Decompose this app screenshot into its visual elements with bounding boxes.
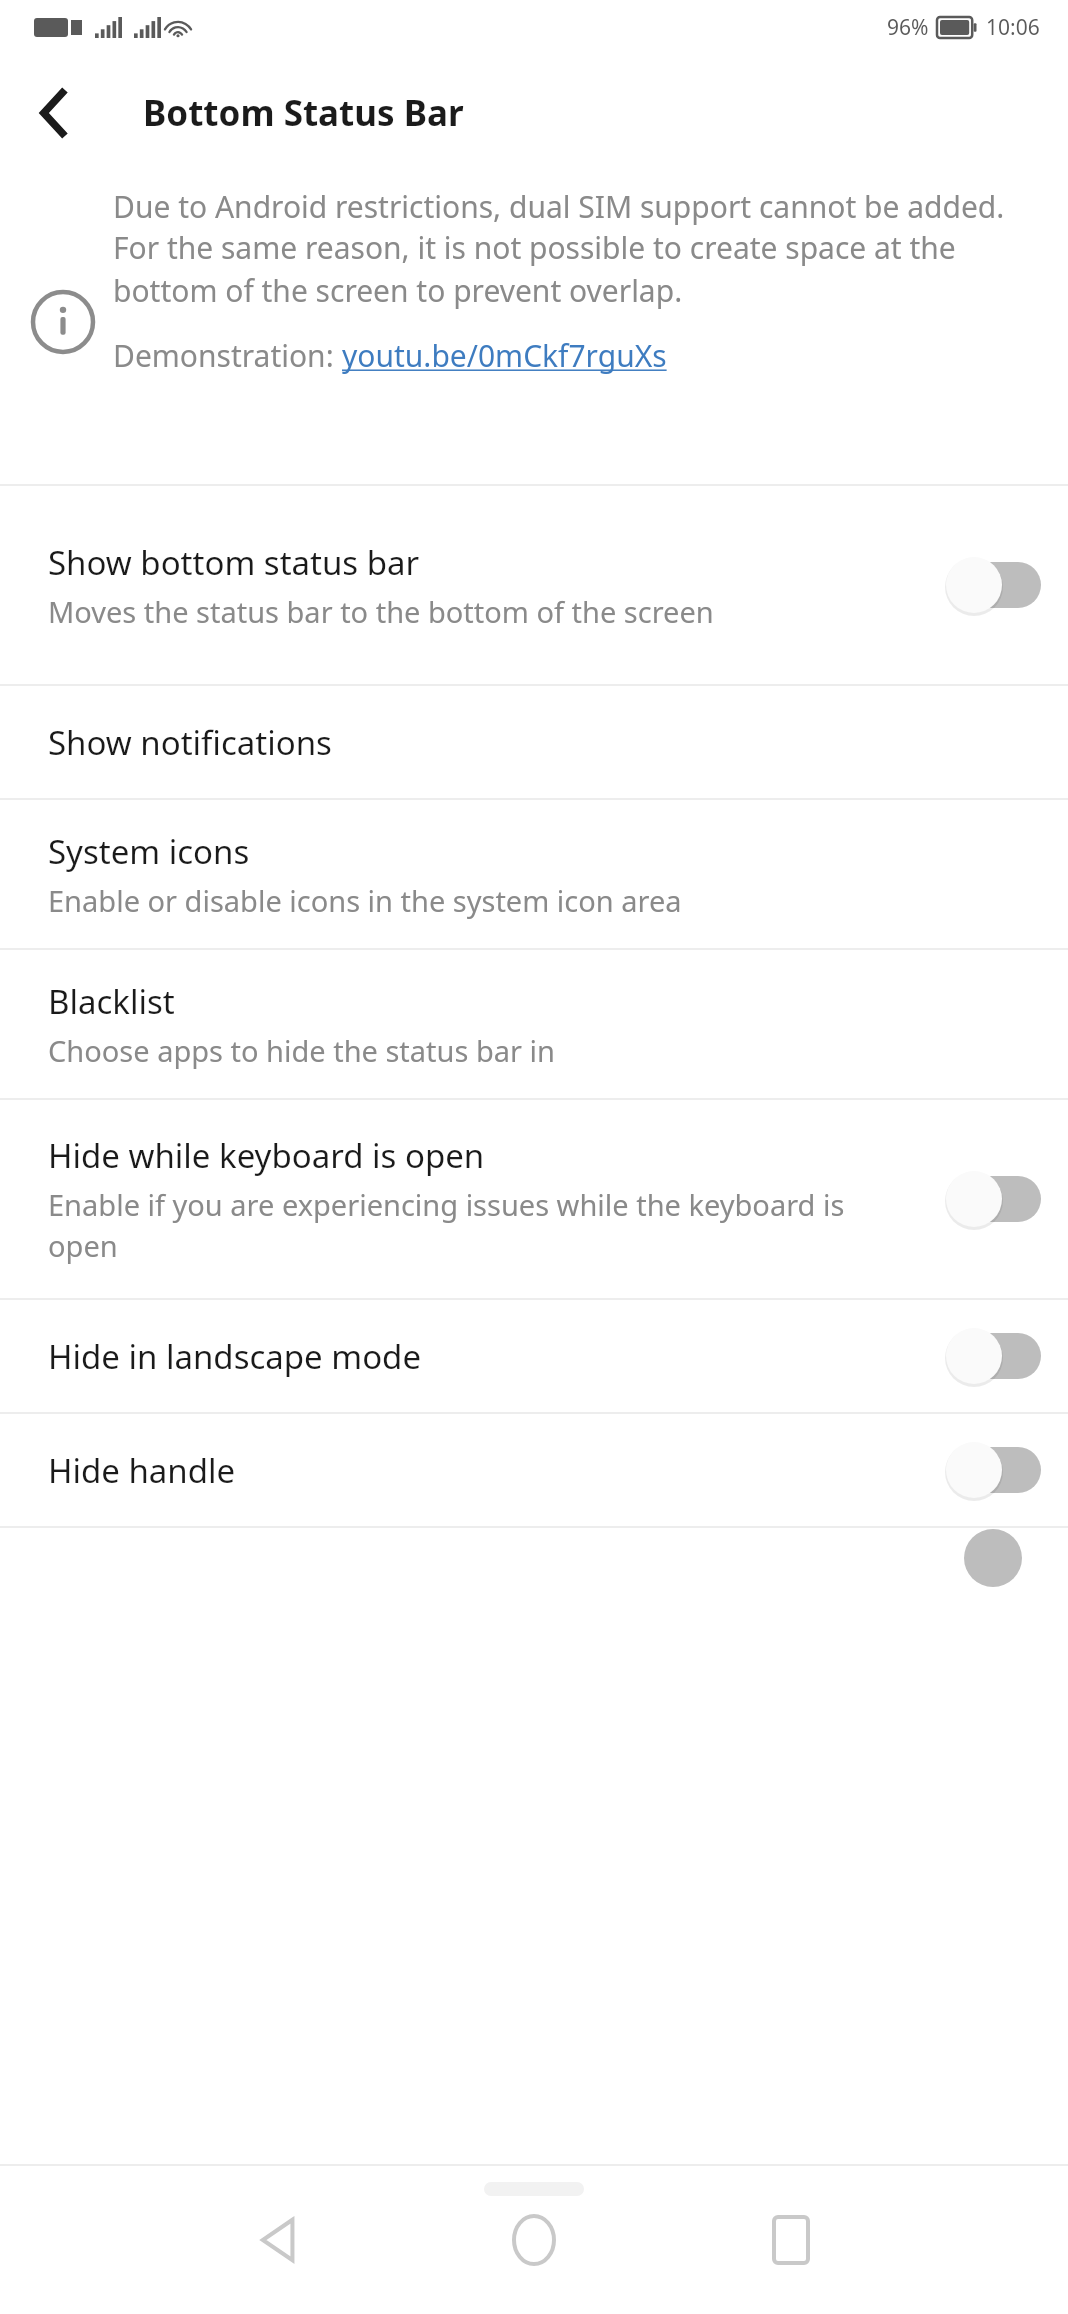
staticText: Enable if you are experiencing issues wh… bbox=[48, 1185, 900, 1266]
button[interactable]: Recents bbox=[748, 2197, 834, 2283]
button[interactable]: Hide in landscape mode bbox=[0, 1300, 1068, 1412]
staticText: Demonstration: bbox=[113, 335, 342, 376]
staticText: Hide while keyboard is open bbox=[48, 1133, 485, 1178]
staticText: For the same reason, it is not possible … bbox=[113, 227, 1044, 311]
button[interactable]: Home bbox=[491, 2197, 577, 2283]
staticText: Bottom Status Bar bbox=[143, 89, 464, 137]
staticText: Moves the status bar to the bottom of th… bbox=[48, 592, 714, 631]
staticText: Blacklist bbox=[48, 979, 175, 1024]
staticText: Enable or disable icons in the system ic… bbox=[48, 881, 682, 920]
button[interactable]: youtu.be/0mCkf7rguXs bbox=[342, 335, 667, 376]
staticText: System icons bbox=[48, 829, 250, 874]
button[interactable]: Hide handle bbox=[0, 1414, 1068, 1526]
button[interactable]: Hide while keyboard is open bbox=[0, 1100, 1068, 1298]
button[interactable]: Back bbox=[18, 77, 90, 149]
button[interactable]: Show notifications bbox=[0, 686, 1068, 798]
staticText: 96% bbox=[887, 13, 929, 42]
button[interactable]: System icons bbox=[0, 800, 1068, 948]
staticText: Show notifications bbox=[48, 720, 332, 765]
button[interactable]: Blacklist bbox=[0, 950, 1068, 1098]
staticText: Show bottom status bar bbox=[48, 540, 420, 585]
staticText: Due to Android restrictions, dual SIM su… bbox=[113, 186, 1005, 227]
staticText: Hide handle bbox=[48, 1448, 236, 1493]
button[interactable]: Back bbox=[235, 2197, 321, 2283]
button[interactable]: Show bottom status bar bbox=[0, 486, 1068, 684]
staticText: Hide in landscape mode bbox=[48, 1334, 422, 1379]
staticText: Choose apps to hide the status bar in bbox=[48, 1031, 555, 1070]
staticText: 10:06 bbox=[986, 13, 1040, 42]
